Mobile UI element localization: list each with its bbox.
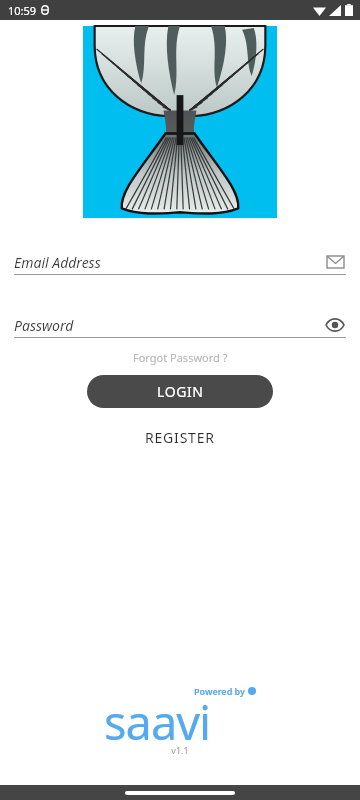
button[interactable]	[83, 26, 277, 218]
button[interactable]: LOGIN	[87, 375, 273, 408]
staticText: Email Address	[14, 253, 324, 272]
staticText: REGISTER	[145, 428, 215, 447]
staticText: Forgot Password ?	[133, 350, 228, 365]
staticText: 10:59	[8, 3, 37, 18]
button[interactable]: Email	[324, 251, 346, 273]
button[interactable]: REGISTER	[0, 428, 360, 447]
staticText: v1.1	[171, 744, 189, 756]
button[interactable]: Email Address	[14, 250, 346, 274]
button[interactable]: Show password	[324, 314, 346, 336]
button[interactable]: Powered by	[104, 686, 256, 738]
button[interactable]: Password	[14, 313, 346, 337]
button[interactable]: Forgot Password ?	[0, 350, 360, 365]
staticText: LOGIN	[157, 382, 204, 401]
staticText: saavi	[104, 690, 211, 742]
staticText: Password	[14, 316, 324, 335]
staticText: Powered by	[194, 685, 245, 697]
